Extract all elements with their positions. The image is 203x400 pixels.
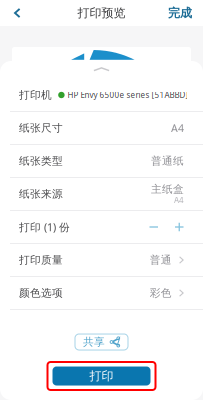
staticText: A4 <box>174 195 184 205</box>
staticText: 打印 (1) 份 <box>19 220 70 234</box>
button[interactable]: 打印质量 <box>0 244 203 277</box>
staticText: 打印质量 <box>19 253 63 266</box>
staticText: 共享 <box>83 335 105 348</box>
staticText: 普通 <box>150 253 172 266</box>
button[interactable]: 纸张来源 <box>0 178 203 211</box>
staticText: 纸张类型 <box>19 154 63 167</box>
button[interactable]: 纸张尺寸 <box>0 112 203 145</box>
staticText: A4 <box>171 121 184 135</box>
staticText: 主纸盒 <box>151 183 184 196</box>
button[interactable]: 打印 (1) 份 <box>0 211 203 244</box>
staticText: 纸张来源 <box>19 187 63 200</box>
staticText: 完成 <box>168 6 192 20</box>
staticText: HP Envy 6500e series [51ABBD] <box>67 90 188 100</box>
button[interactable]: 纸张类型 <box>0 145 203 178</box>
staticText: 普通纸 <box>151 154 184 167</box>
staticText: 打印 <box>89 369 113 383</box>
staticText: 纸张尺寸 <box>19 121 63 134</box>
button[interactable]: 打印 <box>52 366 150 385</box>
staticText: 彩色 <box>150 286 172 299</box>
button[interactable]: 颜色选项 <box>0 277 203 310</box>
staticText: 颜色选项 <box>19 286 63 299</box>
button[interactable]: 共享 <box>75 334 128 350</box>
button[interactable]: Back <box>0 0 46 26</box>
button[interactable]: 打印机 <box>0 79 203 112</box>
staticText: 打印预览 <box>77 6 125 20</box>
button[interactable]: 完成 <box>158 0 203 26</box>
staticText: 打印机 <box>19 88 52 101</box>
